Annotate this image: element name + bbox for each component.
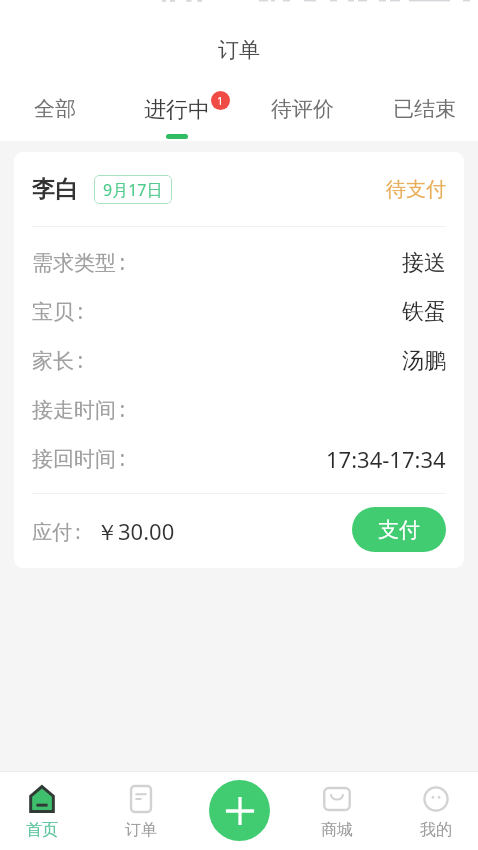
staticText: 应付 : — [32, 518, 81, 545]
staticText: 1 — [217, 93, 224, 108]
button[interactable]: 首页 — [0, 775, 84, 850]
staticText: 订单 — [218, 37, 260, 63]
button[interactable]: 订单 — [99, 775, 183, 850]
staticText: 待支付 — [386, 177, 446, 202]
staticText: 订单 — [125, 820, 157, 840]
button[interactable]: 已结束 — [370, 84, 478, 141]
staticText: 家长 : — [32, 346, 84, 375]
staticText: 接走时间 : — [32, 395, 126, 424]
staticText: 待评价 — [271, 96, 334, 122]
staticText: 已结束 — [393, 96, 456, 122]
staticText: 宝贝 : — [32, 297, 84, 326]
button[interactable]: 李白 — [14, 152, 464, 568]
button[interactable]: 待评价 — [248, 84, 356, 141]
button[interactable]: 商城 — [295, 775, 379, 850]
staticText: 铁蛋 — [402, 298, 446, 326]
button[interactable]: 进行中 — [123, 84, 231, 141]
staticText: 接回时间 : — [32, 444, 126, 473]
button[interactable]: Add — [209, 780, 270, 841]
staticText: 全部 — [34, 96, 76, 122]
staticText: 进行中 — [144, 96, 210, 124]
staticText: 支付 — [378, 517, 420, 543]
button[interactable]: 我的 — [394, 775, 478, 850]
staticText: ￥30.00 — [96, 516, 175, 546]
staticText: 首页 — [26, 820, 58, 840]
staticText: 李白 — [32, 175, 78, 204]
button[interactable]: 支付 — [352, 507, 446, 552]
staticText: 17:34-17:34 — [326, 444, 446, 474]
staticText: 我的 — [420, 820, 452, 840]
staticText: 汤鹏 — [402, 347, 446, 375]
staticText: 9月17日 — [103, 179, 163, 201]
button[interactable]: 全部 — [13, 84, 97, 141]
staticText: 商城 — [321, 820, 353, 840]
staticText: 需求类型 : — [32, 248, 126, 277]
staticText: 接送 — [402, 249, 446, 277]
